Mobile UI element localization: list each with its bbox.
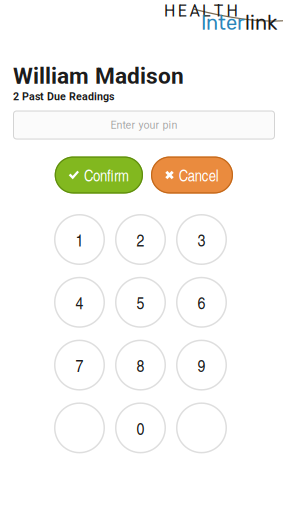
button[interactable]: 2	[115, 214, 166, 265]
staticText: 8	[136, 353, 144, 377]
staticText: link	[245, 11, 277, 35]
staticText: Confirm	[84, 164, 129, 186]
button[interactable]: 4	[54, 277, 105, 328]
staticText: 9	[197, 353, 205, 377]
staticText: Cancel	[179, 164, 219, 186]
button[interactable]: 6	[176, 277, 227, 328]
staticText: William Madison	[13, 63, 184, 89]
staticText: L	[202, 2, 211, 20]
button[interactable]: 5	[115, 277, 166, 328]
staticText: Enter your pin	[110, 119, 177, 131]
staticText: 7	[75, 353, 83, 377]
staticText: 6	[197, 290, 205, 314]
button[interactable]: 3	[176, 214, 227, 265]
staticText: 3	[197, 228, 205, 251]
staticText: A	[189, 2, 199, 20]
staticText: H	[164, 2, 175, 20]
button[interactable]: 1	[54, 214, 105, 265]
staticText: Inter	[201, 11, 245, 35]
button[interactable]	[176, 402, 227, 453]
button[interactable]	[54, 402, 105, 453]
staticText: T	[214, 2, 224, 20]
button[interactable]: 7	[54, 340, 105, 391]
staticText: 2 Past Due Readings	[13, 90, 114, 103]
staticText: 4	[75, 290, 83, 314]
staticText: 2	[136, 228, 144, 251]
staticText: H	[226, 2, 237, 20]
button[interactable]: 8	[115, 340, 166, 391]
staticText: 5	[136, 290, 144, 314]
staticText: E	[178, 2, 187, 20]
button[interactable]: 0	[115, 402, 166, 453]
button[interactable]: Cancel	[151, 156, 233, 193]
staticText: 0	[136, 416, 144, 440]
staticText: 1	[75, 228, 83, 251]
button[interactable]: 9	[176, 340, 227, 391]
button[interactable]: Confirm	[55, 156, 143, 193]
